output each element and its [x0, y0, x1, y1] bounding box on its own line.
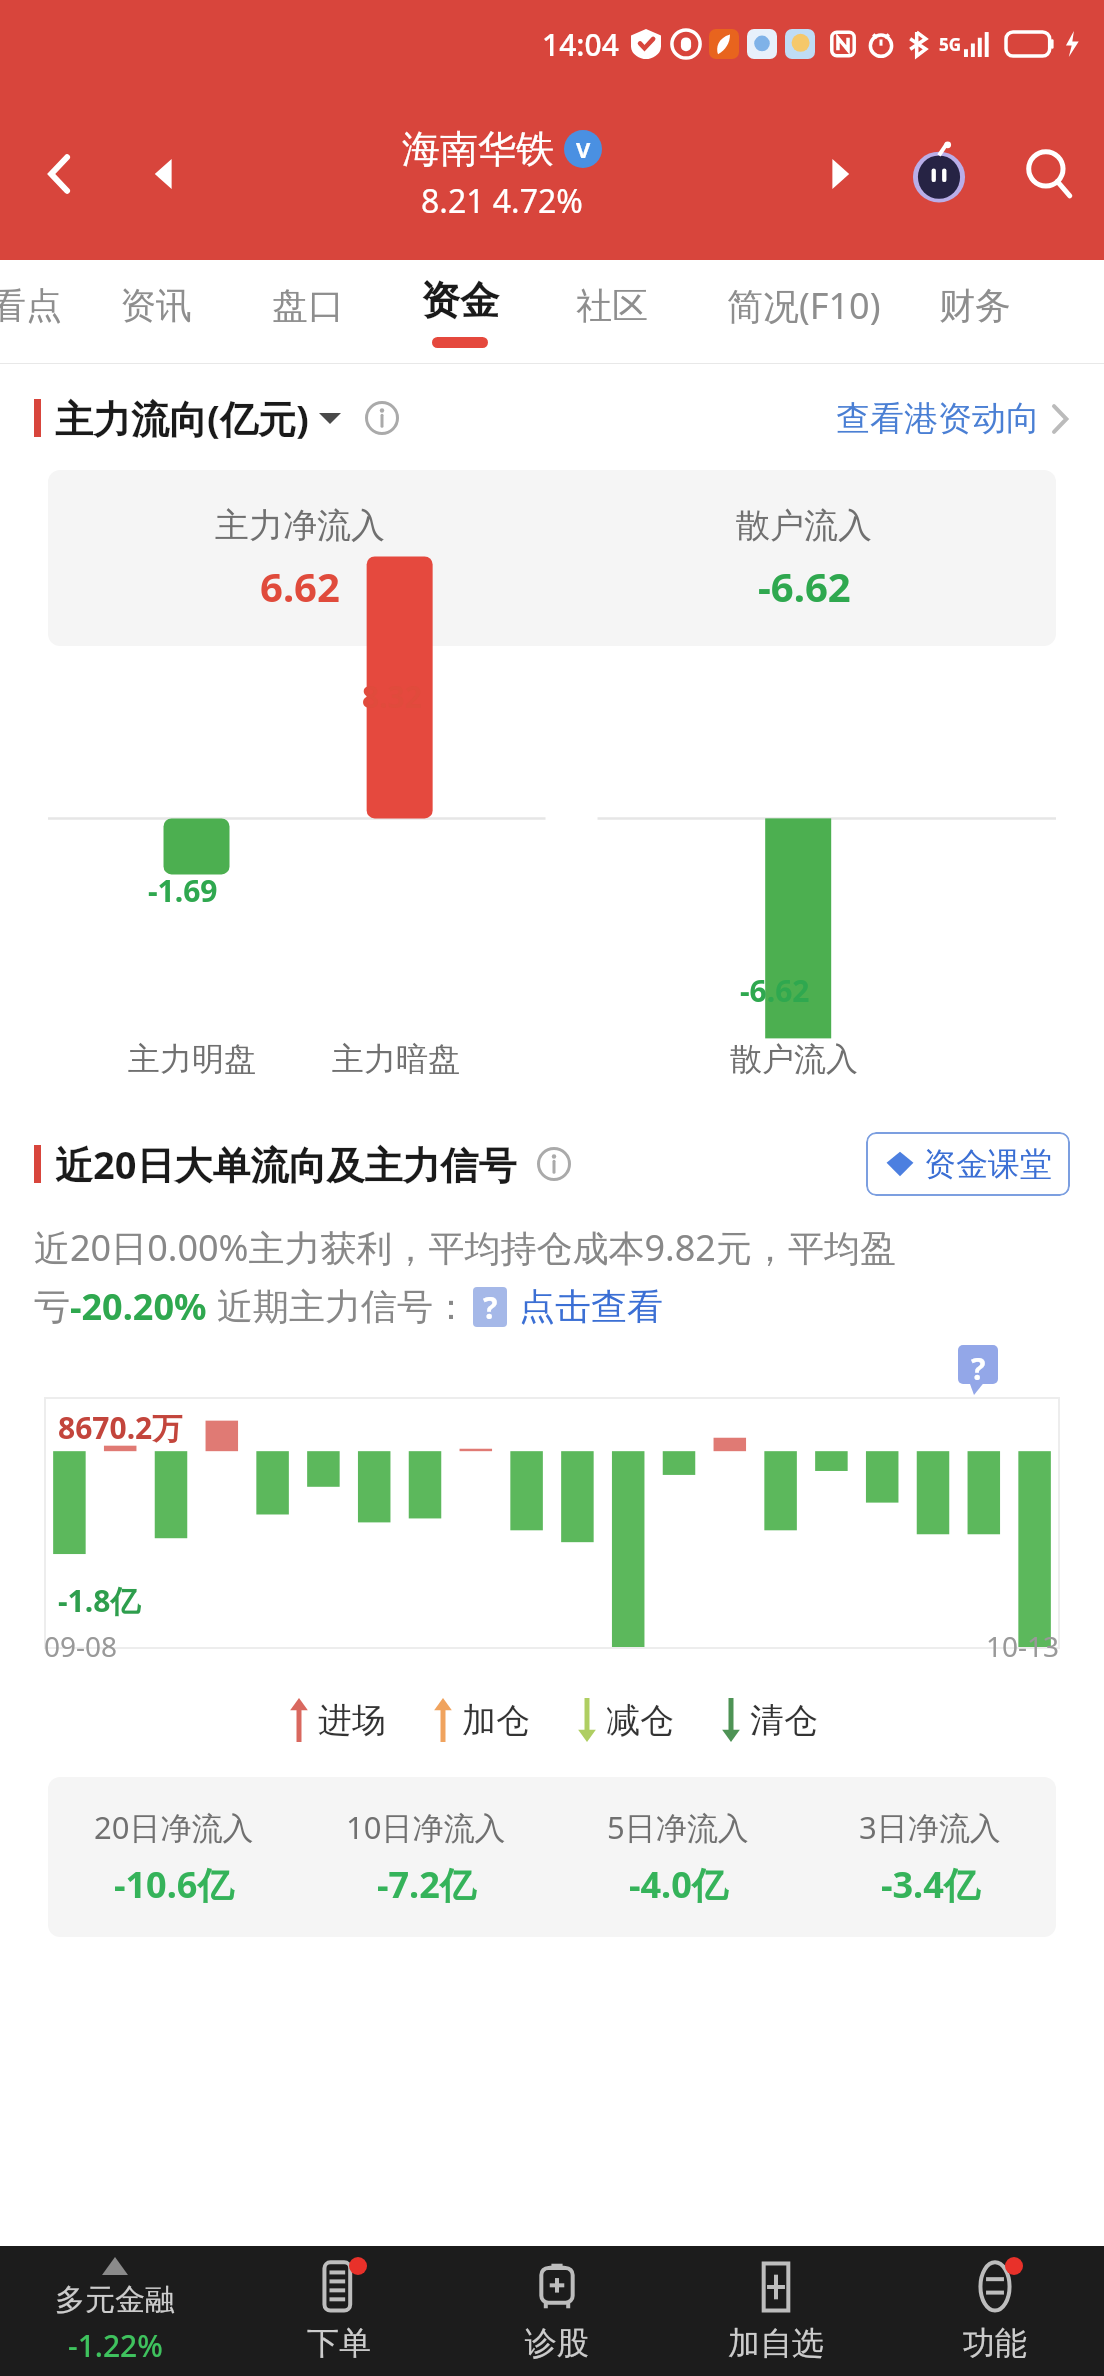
staticText: 14:04 [542, 24, 619, 65]
staticText: 资讯 [120, 283, 192, 328]
staticText: 点击查看 [519, 1284, 663, 1329]
button[interactable]: Next stock [794, 88, 884, 260]
staticText: 主力流向(亿元) [55, 392, 309, 444]
staticText: 20日净流入 [94, 1806, 254, 1848]
button[interactable]: 资讯 [80, 260, 232, 363]
button[interactable]: Help [958, 1345, 998, 1395]
staticText: 加自选 [728, 2323, 824, 2363]
button[interactable]: 主力流向(亿元) [55, 392, 341, 444]
button[interactable]: 财务 [920, 260, 1030, 363]
button[interactable]: Info [365, 401, 399, 435]
button[interactable]: Search [994, 88, 1104, 260]
staticText: -20.20% [70, 1282, 207, 1331]
button[interactable]: 查看港资动向 [836, 397, 1070, 440]
staticText: 5日净流入 [607, 1806, 749, 1848]
staticText: 盘口 [272, 283, 344, 328]
button[interactable]: 主力净流入 [48, 470, 1056, 646]
staticText: 6.62 [260, 559, 340, 613]
staticText: 主力暗盘 [332, 1039, 460, 1079]
staticText: 散户流入 [736, 504, 872, 547]
staticText: -1.69 [148, 870, 218, 911]
button[interactable]: 资金 [384, 260, 536, 363]
button[interactable]: 下单 [230, 2246, 448, 2376]
staticText: -7.2亿 [377, 1860, 476, 1909]
staticText: -6.62 [758, 559, 851, 613]
staticText: 多元金融 [55, 2281, 175, 2319]
staticText: 诊股 [525, 2323, 589, 2363]
button[interactable]: Info [537, 1147, 571, 1181]
staticText: 5G [939, 33, 962, 56]
staticText: 10日净流入 [346, 1806, 506, 1848]
staticText: 下单 [307, 2323, 371, 2363]
button[interactable]: 简况(F10) [688, 260, 920, 363]
staticText: 近期主力信号： [217, 1284, 469, 1329]
staticText: 10-13 [986, 1627, 1060, 1665]
staticText: 近20日大单流向及主力信号 [55, 1138, 517, 1190]
staticText: V [576, 134, 591, 164]
staticText: 3日净流入 [859, 1806, 1001, 1848]
staticText: -6.62 [740, 970, 810, 1011]
staticText: -3.4亿 [881, 1860, 980, 1909]
staticText: 社区 [576, 283, 648, 328]
staticText: 简况(F10) [727, 281, 881, 330]
staticText: 加仓 [462, 1699, 530, 1742]
button[interactable]: 点击查看 [519, 1284, 663, 1329]
staticText: 09-08 [44, 1627, 118, 1665]
button[interactable]: 20日净流入 [48, 1777, 1056, 1937]
button[interactable]: 功能 [885, 2246, 1104, 2376]
staticText: 看点 [0, 283, 62, 328]
button[interactable]: 资金课堂 [866, 1132, 1070, 1196]
button[interactable]: 清仓 [718, 1698, 818, 1742]
staticText: -1.22% [68, 2325, 163, 2366]
staticText: 8.21 4.72% [421, 179, 583, 223]
staticText: ? [483, 1287, 498, 1327]
staticText: ? [971, 1348, 986, 1389]
button[interactable]: 8670.2万 [44, 1397, 1060, 1649]
staticText: 主力明盘 [128, 1039, 256, 1079]
button[interactable]: 看点 [0, 260, 80, 363]
staticText: 资金 [421, 276, 499, 325]
staticText: 海南华铁 [402, 125, 554, 173]
button[interactable]: 进场 [286, 1698, 386, 1742]
staticText: -4.0亿 [629, 1860, 728, 1909]
staticText: 8.32 [362, 676, 422, 717]
button[interactable]: 多元金融 [0, 2246, 230, 2376]
staticText: -1.8亿 [58, 1580, 141, 1621]
staticText: 散户流入 [730, 1039, 858, 1079]
button[interactable]: 减仓 [574, 1698, 674, 1742]
button[interactable]: 盘口 [232, 260, 384, 363]
staticText: 资金课堂 [924, 1144, 1052, 1184]
staticText: 近20日0.00%主力获利，平均持仓成本9.82元，平均盈 [34, 1223, 896, 1272]
staticText: -10.6亿 [114, 1860, 234, 1909]
button[interactable]: 加自选 [666, 2246, 885, 2376]
button[interactable]: Previous stock [120, 88, 210, 260]
staticText: 财务 [939, 283, 1011, 328]
button[interactable]: 诊股 [448, 2246, 666, 2376]
staticText: 功能 [963, 2323, 1027, 2363]
staticText: 减仓 [606, 1699, 674, 1742]
staticText: 清仓 [750, 1699, 818, 1742]
staticText: 8670.2万 [58, 1407, 183, 1448]
staticText: 查看港资动向 [836, 397, 1040, 440]
button[interactable]: 加仓 [430, 1698, 530, 1742]
staticText: 主力净流入 [215, 504, 385, 547]
button[interactable]: AI assistant [884, 88, 994, 260]
button[interactable]: 社区 [536, 260, 688, 363]
button[interactable]: Back [0, 88, 120, 260]
staticText: 进场 [318, 1699, 386, 1742]
staticText: 亏 [34, 1284, 70, 1329]
